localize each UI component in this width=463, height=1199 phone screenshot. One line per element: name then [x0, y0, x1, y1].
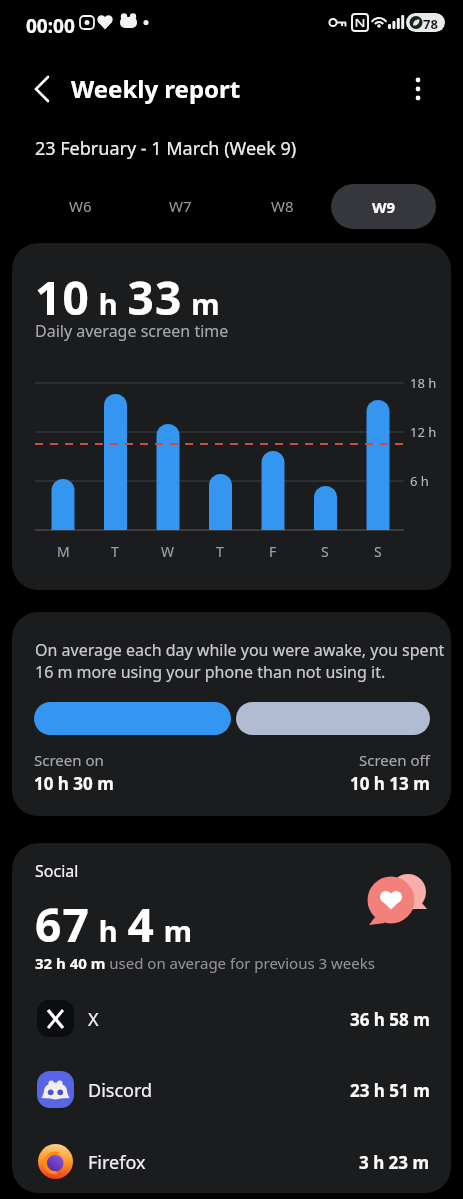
- button[interactable]: Discord: [12, 1054, 451, 1125]
- staticText: 3 h 23 m: [359, 1151, 430, 1174]
- staticText: 23 February - 1 March (Week 9): [35, 136, 297, 161]
- staticText: S: [374, 542, 382, 561]
- staticText: 36 h 58 m: [350, 1008, 430, 1031]
- staticText: 6 h: [410, 472, 429, 490]
- staticText: Daily average screen time: [35, 320, 229, 342]
- staticText: W6: [69, 196, 92, 216]
- staticText: Weekly report: [71, 72, 241, 105]
- staticText: 00:00: [26, 13, 75, 39]
- staticText: M: [57, 542, 70, 561]
- staticText: 78: [423, 15, 438, 32]
- staticText: 12 h: [410, 423, 437, 441]
- staticText: 18 h: [410, 374, 437, 392]
- staticText: 10 h 30 m: [34, 772, 114, 795]
- staticText: 67 h 4 m: [35, 893, 194, 956]
- staticText: T: [111, 542, 119, 561]
- staticText: W9: [372, 197, 396, 217]
- staticText: X: [88, 1007, 99, 1032]
- staticText: F: [269, 542, 277, 561]
- staticText: S: [321, 542, 329, 561]
- staticText: On average each day while you were awake…: [35, 639, 445, 683]
- button[interactable]: Firefox: [12, 1126, 451, 1193]
- staticText: Discord: [88, 1078, 153, 1103]
- staticText: 10 h 13 m: [350, 772, 430, 795]
- staticText: W: [161, 542, 175, 561]
- staticText: W8: [271, 196, 294, 216]
- button[interactable]: [24, 72, 58, 106]
- button[interactable]: [403, 72, 437, 106]
- staticText: 32 h 40 m used on average for previous 3…: [35, 953, 375, 973]
- button[interactable]: W7: [150, 190, 210, 222]
- button[interactable]: W6: [50, 190, 110, 222]
- staticText: 10 h 33 m: [35, 266, 221, 329]
- staticText: W7: [169, 196, 192, 216]
- staticText: Social: [35, 860, 79, 882]
- staticText: 23 h 51 m: [350, 1079, 430, 1102]
- button[interactable]: X: [12, 983, 451, 1054]
- button[interactable]: W8: [252, 190, 312, 222]
- staticText: T: [216, 542, 224, 561]
- staticText: Screen off: [359, 750, 430, 770]
- staticText: Screen on: [34, 750, 104, 770]
- staticText: Firefox: [88, 1150, 146, 1175]
- button[interactable]: W9: [331, 184, 436, 229]
